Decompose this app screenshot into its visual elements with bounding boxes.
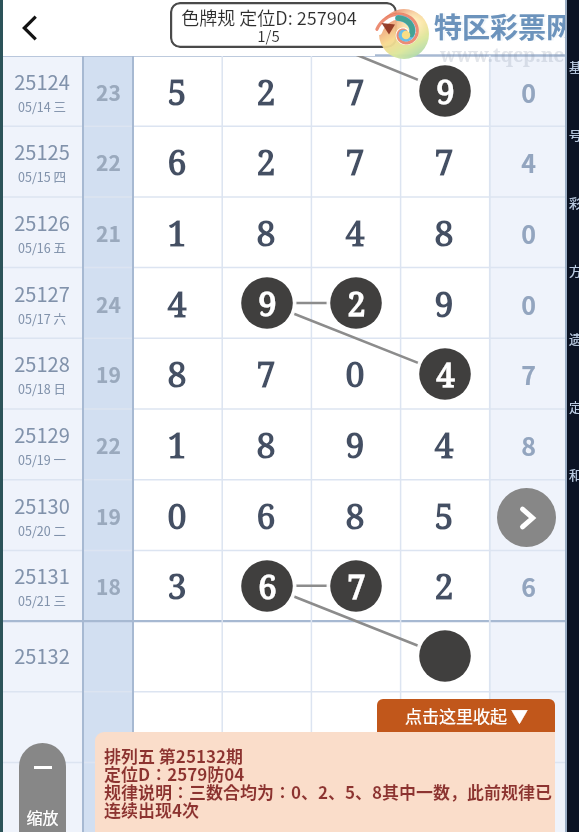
- staticText: 特区彩票网: [436, 6, 577, 47]
- staticText: 9: [345, 422, 365, 468]
- button[interactable]: number 6: [237, 556, 297, 616]
- staticText: 8: [345, 493, 365, 539]
- staticText: 7: [434, 139, 454, 185]
- staticText: 5: [434, 493, 454, 539]
- staticText: 0: [167, 493, 187, 539]
- staticText: 24: [96, 289, 121, 319]
- staticText: 3: [167, 563, 187, 609]
- button[interactable]: 25125: [0, 125, 83, 196]
- staticText: 05/16 五: [18, 238, 66, 256]
- button[interactable]: 色牌规 定位D: 257904: [170, 2, 397, 48]
- button[interactable]: number 9: [237, 273, 297, 333]
- button[interactable]: Side menu: [567, 0, 579, 832]
- staticText: 4: [521, 144, 536, 180]
- staticText: 25128: [14, 349, 70, 378]
- staticText: 6: [258, 564, 277, 609]
- staticText: 定: [569, 397, 579, 416]
- button[interactable]: 25131: [0, 549, 83, 620]
- staticText: 7: [521, 356, 536, 392]
- staticText: 和: [569, 465, 579, 484]
- button[interactable]: number 7: [326, 556, 386, 616]
- staticText: 8: [167, 351, 187, 397]
- staticText: 22: [96, 430, 121, 460]
- staticText: 05/20 二: [18, 521, 66, 539]
- staticText: 8: [521, 427, 536, 463]
- staticText: 缩放: [26, 805, 59, 828]
- staticText: 05/14 三: [18, 97, 66, 115]
- staticText: 25132: [14, 641, 70, 670]
- staticText: 排列五 第25132期 定位D：2579防04 规律说明：三数合均为：0、2、5…: [104, 743, 553, 822]
- staticText: 2: [434, 563, 454, 609]
- staticText: 25124: [14, 67, 70, 96]
- staticText: 1/5: [257, 25, 280, 47]
- staticText: 19: [96, 501, 121, 531]
- staticText: 25129: [14, 420, 70, 449]
- button[interactable]: number 9: [415, 61, 475, 121]
- staticText: 号: [569, 125, 579, 144]
- staticText: 2: [256, 69, 276, 115]
- staticText: 0: [345, 351, 365, 397]
- staticText: 21: [96, 218, 121, 248]
- staticText: 特区彩票网: [434, 6, 575, 47]
- staticText: 25127: [14, 279, 70, 308]
- staticText: 7: [345, 139, 365, 185]
- button[interactable]: number 2: [326, 273, 386, 333]
- staticText: 25131: [14, 561, 70, 590]
- staticText: 彩: [569, 193, 579, 212]
- staticText: 6: [256, 493, 276, 539]
- staticText: 遗: [569, 329, 579, 348]
- staticText: 25125: [14, 137, 70, 166]
- staticText: 25130: [14, 491, 70, 520]
- button[interactable]: 25124: [0, 55, 83, 126]
- button[interactable]: 点击这里收起 ▼: [377, 699, 555, 732]
- staticText: 0: [521, 215, 536, 251]
- button[interactable]: Zoom: [19, 743, 66, 832]
- staticText: 7: [347, 564, 366, 609]
- button[interactable]: 25130: [0, 479, 83, 550]
- staticText: 05/18 日: [18, 379, 66, 397]
- staticText: 05/19 一: [18, 450, 66, 468]
- staticText: 2: [347, 281, 366, 326]
- staticText: 4: [345, 210, 365, 256]
- staticText: 0: [521, 286, 536, 322]
- staticText: 9: [258, 281, 277, 326]
- staticText: 方: [569, 261, 579, 280]
- button[interactable]: number: [415, 626, 475, 686]
- staticText: 19: [96, 359, 121, 389]
- button[interactable]: number 4: [415, 344, 475, 404]
- staticText: 23: [96, 77, 121, 107]
- staticText: 22: [96, 147, 121, 177]
- staticText: 6: [167, 139, 187, 185]
- staticText: 05/21 三: [18, 591, 66, 609]
- button[interactable]: 25129: [0, 408, 83, 479]
- staticText: 8: [256, 422, 276, 468]
- staticText: 05/17 六: [18, 309, 66, 327]
- staticText: 8: [256, 210, 276, 256]
- staticText: 18: [96, 571, 121, 601]
- staticText: 4: [436, 352, 455, 397]
- staticText: 5: [167, 69, 187, 115]
- button[interactable]: 25127: [0, 267, 83, 338]
- staticText: 8: [434, 210, 454, 256]
- button[interactable]: 25132: [0, 620, 83, 691]
- staticText: 1: [167, 210, 187, 256]
- staticText: www.tqcp.net: [440, 42, 573, 68]
- staticText: 点击这里收起 ▼: [405, 703, 528, 728]
- button[interactable]: 25126: [0, 196, 83, 267]
- staticText: 25126: [14, 208, 70, 237]
- staticText: 2: [256, 139, 276, 185]
- staticText: 7: [256, 351, 276, 397]
- staticText: 色牌规 定位D: 257904: [181, 4, 357, 30]
- button[interactable]: Back: [8, 6, 52, 50]
- staticText: 4: [434, 422, 454, 468]
- staticText: 基: [569, 57, 579, 76]
- staticText: 1: [167, 422, 187, 468]
- staticText: 9: [436, 69, 455, 114]
- button[interactable]: Next page: [497, 488, 556, 547]
- staticText: 05/15 四: [18, 167, 66, 185]
- staticText: 6: [521, 568, 536, 604]
- button[interactable]: 25128: [0, 337, 83, 408]
- staticText: 9: [434, 281, 454, 327]
- staticText: 7: [345, 69, 365, 115]
- staticText: 0: [521, 74, 536, 110]
